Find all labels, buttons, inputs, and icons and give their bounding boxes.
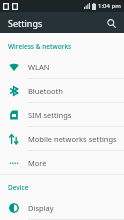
staticText: Settings <box>8 17 43 29</box>
staticText: Bluetooth <box>28 86 63 96</box>
staticText: Display <box>28 203 54 213</box>
staticText: SIM settings <box>28 110 72 120</box>
button[interactable]: SIM settings <box>0 103 124 126</box>
button[interactable]: Mobile networks settings <box>0 127 124 150</box>
button[interactable]: More <box>0 151 124 174</box>
button[interactable]: Search <box>103 15 119 31</box>
staticText: Mobile networks settings <box>28 134 117 144</box>
staticText: Device <box>8 183 29 192</box>
button[interactable]: Display <box>0 196 124 219</box>
staticText: More <box>28 158 47 168</box>
staticText: 1:04 pm <box>98 2 121 10</box>
staticText: WLAN <box>28 62 50 72</box>
staticText: Wireless & networks <box>8 42 72 51</box>
button[interactable]: WLAN <box>0 55 124 78</box>
button[interactable]: Bluetooth <box>0 79 124 102</box>
